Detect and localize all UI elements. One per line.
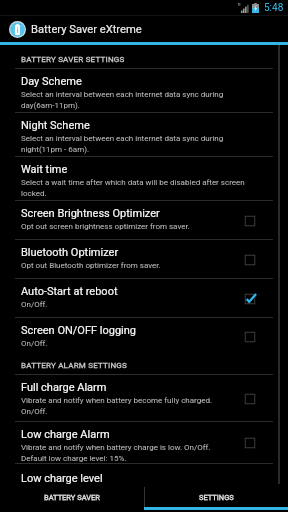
button[interactable]: SETTINGS bbox=[144, 484, 288, 512]
staticText: Low charge level bbox=[21, 472, 103, 484]
staticText: Select an interval between each internet… bbox=[21, 90, 255, 110]
button[interactable]: Low charge Alarm bbox=[0, 422, 288, 464]
button[interactable]: Full charge Alarm bbox=[0, 375, 288, 422]
staticText: Screen ON/OFF logging bbox=[21, 324, 137, 337]
staticText: Vibrate and notify when battery charge i… bbox=[21, 443, 226, 463]
staticText: Low charge Alarm bbox=[21, 428, 110, 441]
staticText: Battery Saver eXtreme bbox=[31, 23, 142, 36]
staticText: Night Scheme bbox=[21, 119, 90, 132]
staticText: BATTERY SAVER bbox=[44, 493, 100, 502]
button[interactable]: Day Scheme bbox=[0, 69, 288, 113]
other: Mobile signal bbox=[238, 3, 249, 13]
other: Battery charging bbox=[252, 3, 259, 13]
staticText: BATTERY ALARM SETTINGS bbox=[21, 361, 128, 370]
button[interactable]: Screen Brightness Optimizer bbox=[0, 201, 288, 240]
staticText: BATTERY SAVER SETTINGS bbox=[21, 55, 125, 64]
button[interactable]: Wait time bbox=[0, 157, 288, 201]
staticText: Select a wait time after which data will… bbox=[21, 178, 255, 198]
other: App icon bbox=[9, 21, 26, 38]
button[interactable]: Bluetooth Optimizer bbox=[0, 240, 288, 279]
staticText: Wait time bbox=[21, 163, 68, 176]
staticText: Opt out screen brightness optimizer from… bbox=[21, 222, 190, 231]
button[interactable]: BATTERY SAVER bbox=[0, 484, 144, 512]
staticText: 5:48 bbox=[264, 2, 284, 14]
staticText: Full charge Alarm bbox=[21, 381, 107, 394]
button[interactable]: Night Scheme bbox=[0, 113, 288, 157]
staticText: Screen Brightness Optimizer bbox=[21, 207, 160, 220]
staticText: Vibrate and notify when battery become f… bbox=[21, 396, 226, 416]
staticText: Select an interval between each internet… bbox=[21, 134, 255, 154]
staticText: Auto-Start at reboot bbox=[21, 285, 118, 298]
button[interactable]: Screen ON/OFF logging bbox=[0, 318, 288, 356]
staticText: Bluetooth Optimizer bbox=[21, 246, 119, 259]
staticText: Day Scheme bbox=[21, 75, 82, 88]
staticText: SETTINGS bbox=[199, 493, 234, 502]
staticText: On/Off. bbox=[21, 339, 48, 348]
staticText: On/Off. bbox=[21, 300, 48, 309]
staticText: Opt out Bluetooth optimizer from saver. bbox=[21, 261, 161, 270]
button[interactable]: Auto-Start at reboot bbox=[0, 279, 288, 318]
